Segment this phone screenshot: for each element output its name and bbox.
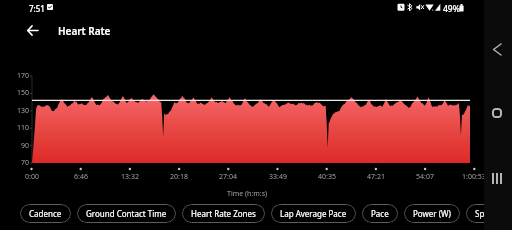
staticText: 13:32	[121, 172, 139, 182]
button[interactable]: Speed	[466, 204, 508, 223]
staticText: 70	[21, 158, 30, 168]
staticText: 49%	[443, 3, 460, 15]
staticText: Power (W)	[413, 208, 451, 219]
button[interactable]: Navigate up	[18, 16, 47, 45]
staticText: Pace	[371, 208, 389, 219]
staticText: 20:18	[170, 172, 188, 182]
button[interactable]: Pace	[362, 204, 398, 223]
staticText: Cadence	[29, 208, 62, 219]
staticText: 150	[17, 88, 30, 98]
staticText: 7:51	[29, 3, 45, 14]
staticText: 54:07	[416, 172, 434, 182]
button[interactable]: Cadence	[20, 204, 71, 223]
staticText: Time (h:m:s)	[227, 189, 268, 199]
staticText: Speed	[475, 208, 499, 219]
staticText: 47:21	[367, 172, 385, 182]
staticText: Heart Rate Zones	[191, 208, 256, 219]
button[interactable]: Heart Rate Zones	[182, 204, 265, 223]
button[interactable]: Power (W)	[404, 204, 460, 223]
button[interactable]: Ground Contact Time	[77, 204, 176, 223]
staticText: Ground Contact Time	[86, 208, 167, 219]
staticText: 130	[17, 106, 30, 116]
staticText: 27:04	[219, 172, 237, 182]
staticText: 0:00	[25, 172, 39, 182]
staticText: 110	[17, 123, 30, 133]
staticText: Heart Rate	[58, 24, 111, 38]
staticText: 170	[17, 71, 30, 81]
staticText: 1:00:53	[462, 172, 486, 182]
button[interactable]: Lap Average Pace	[271, 204, 356, 223]
button[interactable]: Home	[485, 101, 509, 125]
staticText: 40:35	[318, 172, 336, 182]
staticText: 6:46	[74, 172, 88, 182]
button[interactable]: Back	[485, 37, 509, 61]
staticText: Lap Average Pace	[280, 208, 347, 219]
staticText: 33:49	[269, 172, 287, 182]
button[interactable]: Recent apps	[485, 166, 509, 190]
staticText: 90	[21, 141, 30, 151]
